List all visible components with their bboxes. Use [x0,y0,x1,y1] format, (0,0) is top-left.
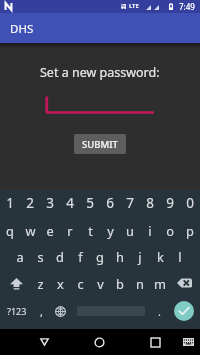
button[interactable]: e [40,217,60,243]
staticText: d [56,248,64,265]
button[interactable]: i [140,217,160,243]
staticText: v [97,275,104,292]
staticText: c [77,275,84,292]
button[interactable]: 9 [160,190,180,216]
button[interactable]: Backspace [169,270,199,296]
staticText: 5 [86,194,94,212]
staticText: n [136,275,144,292]
button[interactable]: 4 [60,190,80,216]
staticText: r [67,222,73,239]
staticText: t [88,222,93,239]
staticText: e [46,222,54,239]
staticText: x [57,275,64,292]
button[interactable]: h [110,243,130,269]
staticText: VoLTE [121,4,126,9]
button[interactable]: u [120,217,140,243]
staticText: h [116,248,124,265]
button[interactable]: c [70,270,90,296]
button[interactable]: 8 [140,190,160,216]
staticText: 2 [26,194,34,212]
button[interactable]: s [30,243,50,269]
button[interactable]: x [50,270,70,296]
button[interactable]: l [170,243,190,269]
button[interactable]: a [10,243,30,269]
staticText: LTE [129,2,139,10]
button[interactable]: z [30,270,50,296]
button[interactable]: y [100,217,120,243]
staticText: 1 [6,194,14,212]
button[interactable]: d [50,243,70,269]
button[interactable]: Change keyboard [176,329,200,355]
staticText: z [37,275,44,292]
staticText: 9 [166,194,174,212]
button[interactable]: p [180,217,200,243]
staticText: b [116,275,124,292]
staticText: 4 [66,194,74,212]
button[interactable]: . [150,297,168,325]
button[interactable]: 7 [120,190,140,216]
staticText: o [166,222,174,239]
staticText: 7 [126,194,134,212]
button[interactable]: g [90,243,110,269]
staticText: m [154,275,166,292]
staticText: . [158,304,161,319]
button[interactable]: v [90,270,110,296]
staticText: , [40,304,43,319]
staticText: 3 [46,194,54,212]
button[interactable]: w [20,217,40,243]
button[interactable]: 1 [0,190,20,216]
button[interactable]: Recent apps [143,329,167,355]
staticText: y [107,222,114,239]
button[interactable]: r [60,217,80,243]
button[interactable]: 0 [180,190,200,216]
staticText: DHS [10,21,34,37]
button[interactable]: SUBMIT [74,134,126,154]
button[interactable]: Done [168,297,200,325]
staticText: 8 [146,194,154,212]
staticText: a [16,248,24,265]
button[interactable]: ?123 [0,297,33,325]
staticText: k [157,248,164,265]
button[interactable]: q [0,217,20,243]
button[interactable]: k [150,243,170,269]
staticText: ?123 [7,305,27,317]
button[interactable]: 3 [40,190,60,216]
button[interactable]: Home [87,329,111,355]
staticText: s [37,248,44,265]
button[interactable]: Shift [1,270,31,296]
button[interactable]: m [150,270,170,296]
staticText: u [126,222,134,239]
staticText: q [6,222,14,239]
staticText: SUBMIT [82,138,118,151]
button[interactable]: Change language [49,297,72,325]
staticText: 6 [106,194,114,212]
staticText: p [186,222,194,239]
staticText: Set a new password: [40,64,160,80]
staticText: i [148,222,152,239]
staticText: 7:49 [179,1,195,12]
button[interactable]: Back [32,329,56,355]
button[interactable]: f [70,243,90,269]
button[interactable] [72,297,150,325]
staticText: w [25,222,36,239]
staticText: f [78,248,83,265]
staticText: g [96,248,104,265]
button[interactable]: 6 [100,190,120,216]
staticText: j [138,248,142,265]
button[interactable]: 5 [80,190,100,216]
button[interactable]: , [33,297,49,325]
button[interactable]: o [160,217,180,243]
staticText: 0 [186,194,194,212]
button[interactable]: t [80,217,100,243]
button[interactable] [44,94,156,115]
staticText: l [178,248,182,265]
button[interactable]: n [130,270,150,296]
button[interactable]: b [110,270,130,296]
button[interactable]: j [130,243,150,269]
button[interactable]: 2 [20,190,40,216]
